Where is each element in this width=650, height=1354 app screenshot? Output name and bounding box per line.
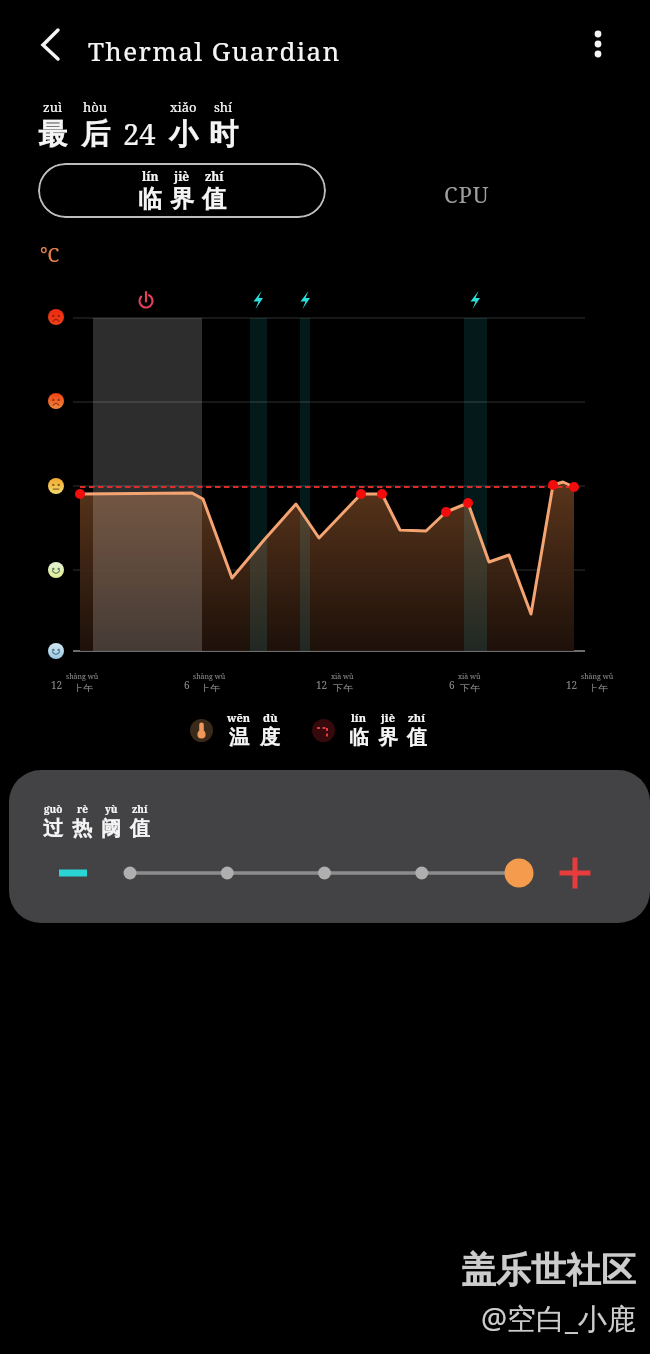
staticText: zhí bbox=[132, 802, 148, 816]
staticText: °C bbox=[40, 242, 60, 268]
staticText: 6 bbox=[184, 678, 190, 692]
staticText: jiè bbox=[174, 168, 190, 184]
staticText: shàng wǔ bbox=[581, 672, 614, 682]
staticText: 6 bbox=[449, 678, 455, 692]
staticText: rè bbox=[77, 802, 88, 816]
staticText: wēn bbox=[227, 710, 251, 725]
staticText: 临 bbox=[138, 184, 162, 214]
staticText: 12 bbox=[51, 678, 63, 692]
staticText: 上午 bbox=[200, 682, 220, 692]
staticText: Thermal Guardian bbox=[88, 33, 341, 68]
staticText: 后 bbox=[81, 116, 110, 153]
staticText: zhí bbox=[205, 168, 224, 184]
staticText: 下午 bbox=[333, 682, 353, 692]
staticText: zuì bbox=[43, 98, 63, 116]
staticText: 阈 bbox=[101, 816, 121, 841]
staticText: 值 bbox=[130, 816, 150, 841]
button[interactable]: CPU bbox=[444, 179, 490, 209]
staticText: 下午 bbox=[460, 682, 480, 692]
staticText: 最 bbox=[38, 116, 67, 153]
staticText: jiè bbox=[381, 710, 395, 725]
staticText: 界 bbox=[378, 725, 398, 750]
staticText: 过 bbox=[43, 816, 63, 841]
staticText: 时 bbox=[209, 116, 238, 153]
staticText: xià wǔ bbox=[458, 672, 481, 682]
staticText: 盖乐世社区 bbox=[461, 1248, 636, 1292]
staticText: zhí bbox=[408, 710, 426, 725]
staticText: xiǎo bbox=[170, 98, 197, 116]
staticText: 值 bbox=[202, 184, 226, 214]
staticText: 12 bbox=[566, 678, 578, 692]
button[interactable]: Temperature bbox=[190, 719, 213, 742]
staticText: shàng wǔ bbox=[66, 672, 99, 682]
staticText: lín bbox=[142, 168, 159, 184]
button[interactable]: Threshold bbox=[312, 719, 335, 742]
staticText: lín bbox=[351, 710, 367, 725]
staticText: dù bbox=[263, 710, 278, 725]
staticText: shàng wǔ bbox=[193, 672, 226, 682]
button[interactable]: Back bbox=[26, 21, 74, 69]
staticText: yù bbox=[105, 802, 118, 816]
staticText: shí bbox=[214, 98, 233, 116]
staticText: hòu bbox=[83, 98, 108, 116]
staticText: 上午 bbox=[588, 682, 608, 692]
staticText: 界 bbox=[170, 184, 194, 214]
staticText: 值 bbox=[407, 725, 427, 750]
staticText: 上午 bbox=[73, 682, 93, 692]
staticText: 温 bbox=[229, 725, 249, 750]
button[interactable]: More options bbox=[578, 24, 618, 64]
button[interactable]: lín bbox=[38, 163, 326, 218]
staticText: 24 bbox=[123, 114, 156, 153]
staticText: 度 bbox=[260, 725, 280, 750]
staticText: 热 bbox=[72, 816, 92, 841]
staticText: 临 bbox=[349, 725, 369, 750]
staticText: guò bbox=[44, 802, 63, 816]
button[interactable]: Decrease threshold bbox=[54, 853, 94, 893]
staticText: 12 bbox=[316, 678, 328, 692]
staticText: xià wǔ bbox=[331, 672, 354, 682]
staticText: @空白_小鹿 bbox=[481, 1298, 636, 1338]
button[interactable]: Increase threshold bbox=[555, 853, 595, 893]
staticText: 小 bbox=[169, 116, 198, 153]
